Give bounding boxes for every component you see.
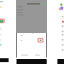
button[interactable]: App screens [0, 0, 64, 64]
